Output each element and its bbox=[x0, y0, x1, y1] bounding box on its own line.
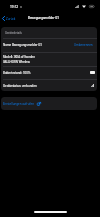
staticText: Zurück bbox=[6, 17, 16, 21]
staticText: 19:12 bbox=[10, 5, 19, 9]
button[interactable]: Zurück bbox=[0, 12, 20, 25]
staticText: Gerätestatus: verbunden bbox=[3, 84, 37, 88]
other: Signalstärke bbox=[91, 84, 94, 87]
staticText: Einstellungen aufrufen bbox=[3, 102, 35, 106]
staticText: Gerätedetails bbox=[5, 31, 22, 35]
other: Einstellungen öffnen bbox=[37, 102, 41, 106]
button[interactable]: Modell: IKEA of Sweden bbox=[1, 52, 97, 66]
button[interactable]: Gerätedetails bbox=[1, 27, 97, 38]
staticText: Modell: IKEA of Sweden bbox=[3, 55, 35, 59]
staticText: Bewegungsmelder G1 bbox=[28, 16, 59, 20]
button[interactable]: Gerätestatus: verbunden bbox=[1, 79, 97, 91]
button[interactable]: Batteriestand: 100% bbox=[1, 66, 97, 79]
staticText: Name Bewegungsmelder G1 bbox=[3, 43, 42, 47]
staticText: Batteriestand: 100% bbox=[3, 71, 31, 75]
staticText: VALLHORN Wireless bbox=[3, 60, 30, 64]
button[interactable]: Einstellungen aufrufen bbox=[1, 97, 97, 110]
other: Batteriestand bbox=[90, 71, 95, 74]
button[interactable]: Name Bewegungsmelder G1 bbox=[1, 38, 97, 51]
staticText: Umbenennen bbox=[74, 43, 93, 47]
